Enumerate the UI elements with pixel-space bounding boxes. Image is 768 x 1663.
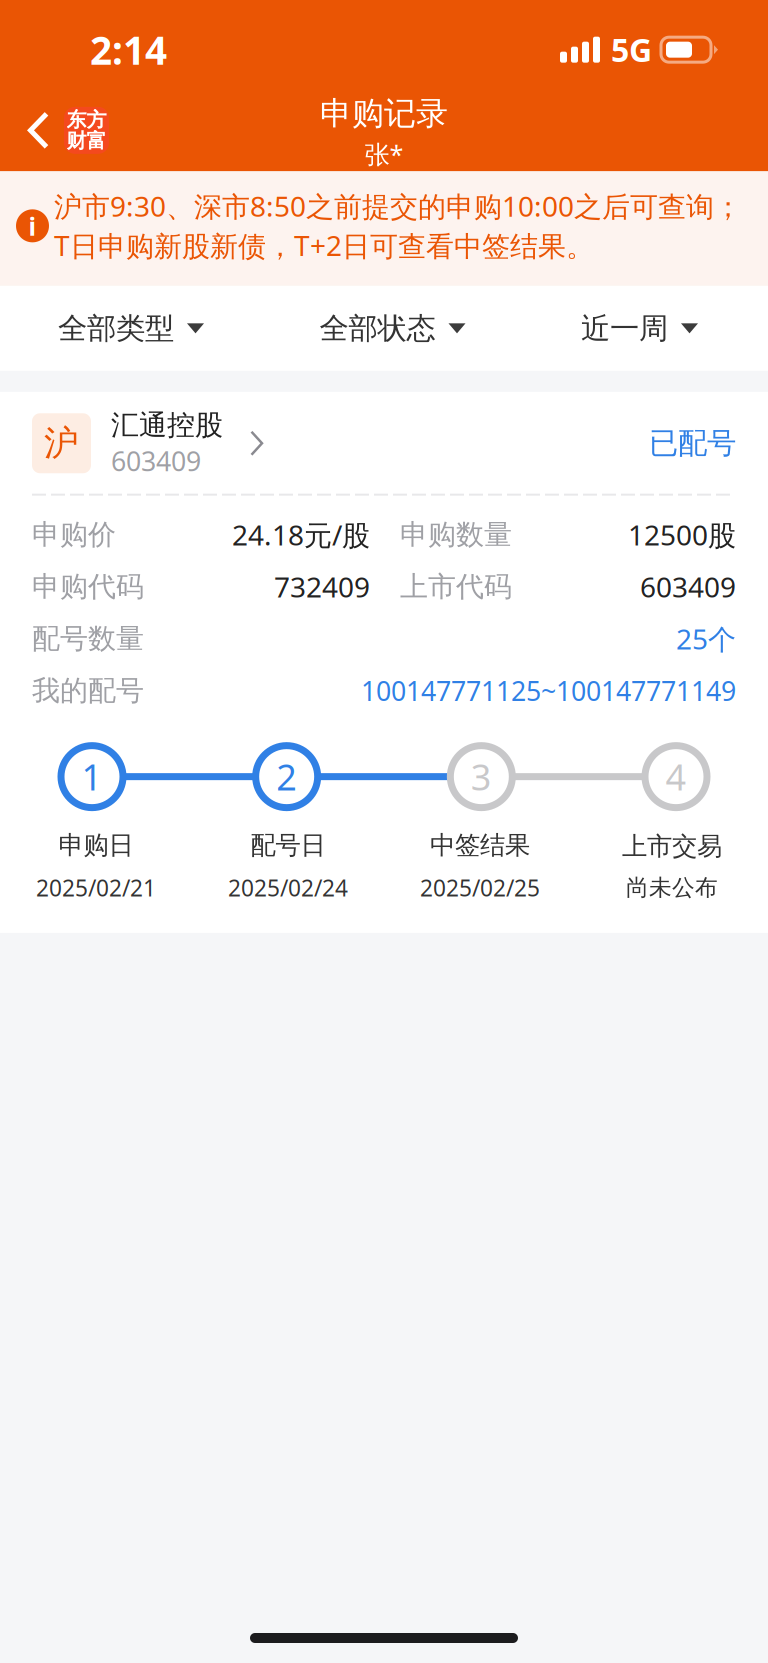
staticText: 已配号: [649, 425, 736, 461]
staticText: 4: [665, 753, 686, 800]
button[interactable]: 全部状态: [319, 296, 465, 360]
staticText: 我的配号: [32, 673, 144, 708]
staticText: 申购代码: [32, 569, 144, 604]
staticText: 上市交易: [622, 831, 722, 862]
staticText: 全部状态: [319, 310, 435, 346]
staticText: 2025/02/21: [36, 873, 156, 903]
staticText: 2025/02/25: [420, 873, 540, 903]
staticText: 2:14: [90, 24, 167, 75]
staticText: 1: [81, 753, 102, 800]
staticText: 24.18元/股: [232, 516, 370, 553]
staticText: 2: [276, 753, 297, 800]
staticText: 5G: [611, 28, 652, 71]
staticText: 中签结果: [430, 830, 530, 861]
staticText: 配号数量: [32, 621, 144, 656]
staticText: 财: [66, 129, 86, 153]
staticText: 732409: [274, 568, 370, 605]
button[interactable]: 全部类型: [58, 296, 204, 360]
button[interactable]: 沪: [32, 408, 736, 479]
staticText: 603409: [640, 568, 736, 605]
staticText: 100147771125~100147771149: [361, 673, 736, 708]
staticText: 沪: [44, 422, 79, 465]
staticText: 汇通控股: [111, 408, 223, 442]
staticText: 方: [86, 108, 106, 132]
staticText: 全部类型: [58, 310, 174, 346]
staticText: 张*: [364, 137, 403, 171]
staticText: 上市代码: [400, 569, 512, 604]
staticText: 3: [471, 753, 492, 800]
staticText: 申购数量: [400, 517, 512, 552]
button[interactable]: Back: [0, 94, 119, 163]
staticText: 沪市9:30、深市8:50之前提交的申购10:00之后可查询；: [54, 187, 742, 224]
staticText: 东: [66, 108, 86, 132]
staticText: 近一周: [581, 310, 668, 346]
staticText: i: [28, 209, 36, 243]
staticText: T日申购新股新债，T+2日可查看中签结果。: [54, 226, 594, 264]
staticText: 申购记录: [320, 94, 448, 133]
staticText: 尚未公布: [626, 874, 718, 902]
staticText: 申购日: [58, 830, 133, 861]
button[interactable]: 近一周: [581, 296, 698, 360]
staticText: 12500股: [628, 516, 736, 553]
staticText: 25个: [676, 620, 736, 657]
staticText: 2025/02/24: [228, 873, 348, 903]
staticText: 富: [86, 129, 106, 153]
staticText: 配号日: [250, 830, 325, 861]
staticText: 申购价: [32, 517, 116, 552]
staticText: 603409: [111, 443, 201, 479]
